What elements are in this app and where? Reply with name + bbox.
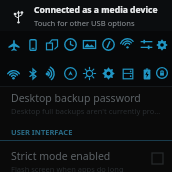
- staticText: Desktop backup password: [11, 91, 141, 105]
- button[interactable]: USB connection: [0, 0, 172, 31]
- staticText: USER INTERFACE: [11, 127, 73, 137]
- button[interactable]: Storage: [118, 64, 137, 83]
- button[interactable]: Wallpaper: [80, 35, 99, 54]
- staticText: Strict mode enabled: [11, 149, 111, 163]
- button[interactable]: Rotation lock: [42, 35, 61, 54]
- button[interactable]: Wi-Fi: [4, 64, 23, 83]
- staticText: Touch for other USB options: [34, 18, 135, 28]
- button[interactable]: Cast screen: [118, 35, 137, 54]
- button[interactable]: Desktop backup password: [0, 88, 172, 121]
- button[interactable]: Location: [61, 64, 80, 83]
- button[interactable]: Brightness: [80, 64, 99, 83]
- staticText: Flash screen when apps do long: [11, 164, 124, 172]
- button[interactable]: Battery: [137, 64, 156, 83]
- button[interactable]: Power: [99, 35, 118, 54]
- button[interactable]: Display settings: [137, 35, 156, 54]
- staticText: Desktop full backups aren't currently pr…: [11, 106, 161, 116]
- other: USB connection: [6, 4, 30, 28]
- button[interactable]: Alarm: [61, 35, 80, 54]
- button[interactable]: Airplane mode: [4, 35, 23, 54]
- button[interactable]: Strict mode enabled: [0, 147, 172, 172]
- button[interactable]: Bluetooth: [23, 64, 42, 83]
- button[interactable]: Screen lock: [156, 64, 168, 83]
- button[interactable]: Strict mode checkbox: [152, 153, 163, 164]
- button[interactable]: Sync: [99, 64, 118, 83]
- button[interactable]: Auto rotate: [23, 35, 42, 54]
- button[interactable]: NFC: [42, 64, 61, 83]
- staticText: Connected as a media device: [34, 4, 158, 16]
- button[interactable]: Settings: [156, 35, 168, 54]
